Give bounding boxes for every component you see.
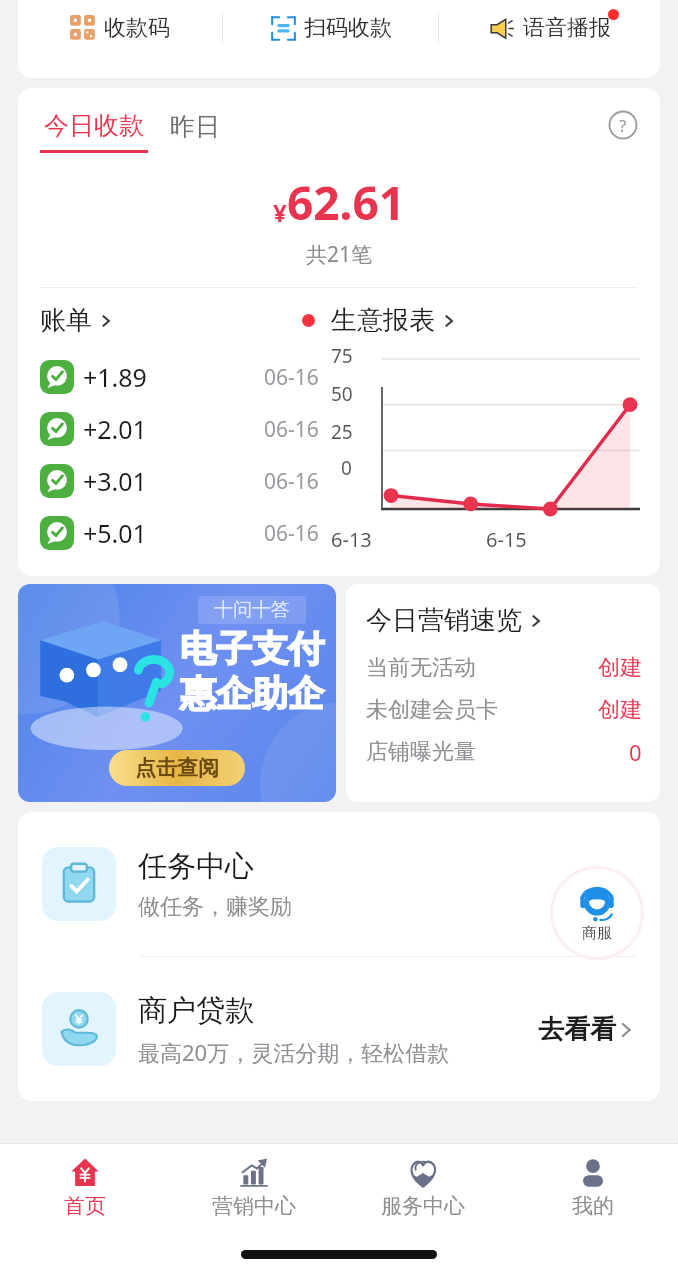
staticText: 6-15 xyxy=(486,526,527,553)
button[interactable]: 账单 xyxy=(40,304,325,337)
staticText: 去... xyxy=(568,866,616,902)
staticText: 服务中心 xyxy=(381,1193,465,1219)
staticText: ? xyxy=(619,114,627,137)
button[interactable]: 扫码收款 xyxy=(223,0,438,56)
button[interactable]: 商服 客服 xyxy=(553,869,641,957)
staticText: 创建 xyxy=(598,654,642,682)
button[interactable]: 语音播报 xyxy=(439,0,660,56)
staticText: 任务中心 xyxy=(138,848,254,885)
staticText: 首页 xyxy=(64,1193,106,1219)
staticText: 生意报表 xyxy=(331,304,435,337)
button[interactable]: 收款码 xyxy=(18,0,222,56)
staticText: 商户贷款 xyxy=(138,992,254,1029)
staticText: +3.01 xyxy=(83,464,147,498)
button[interactable]: 营销中心 xyxy=(169,1144,338,1228)
staticText: 电子支付 xyxy=(180,626,324,671)
staticText: 十问十答 xyxy=(214,598,290,622)
button[interactable]: 帮助 xyxy=(608,110,638,140)
staticText: 当前无活动 xyxy=(366,654,476,682)
staticText: 未创建会员卡 xyxy=(366,696,498,724)
staticText: +2.01 xyxy=(83,412,147,446)
button[interactable]: +3.01 xyxy=(40,455,325,507)
button[interactable]: 我的 xyxy=(508,1144,678,1228)
staticText: 店铺曝光量 xyxy=(366,738,476,766)
staticText: +1.89 xyxy=(83,360,147,394)
staticText: +5.01 xyxy=(83,516,147,550)
button[interactable]: 任务中心 xyxy=(42,812,636,956)
button[interactable]: 当前无活动 xyxy=(366,647,642,689)
staticText: 惠企助企 xyxy=(180,671,324,716)
button[interactable]: 服务中心 xyxy=(338,1144,508,1228)
button[interactable]: 今日营销速览 xyxy=(366,604,544,637)
button[interactable]: 昨日 xyxy=(170,110,220,142)
staticText: ¥ xyxy=(273,196,287,229)
staticText: 语音播报 xyxy=(523,14,611,42)
staticText: 06-16 xyxy=(264,415,319,444)
staticText: 创建 xyxy=(598,696,642,724)
staticText: 06-16 xyxy=(264,363,319,392)
button[interactable]: 点击查阅 xyxy=(109,750,245,786)
button[interactable]: +1.89 xyxy=(40,351,325,403)
staticText: 6-13 xyxy=(331,526,372,553)
staticText: 75 xyxy=(331,343,353,369)
staticText: 50 xyxy=(331,381,353,407)
staticText: 最高20万，灵活分期，轻松借款 xyxy=(138,1037,450,1067)
staticText: 点击查阅 xyxy=(135,755,219,781)
button[interactable]: 店铺曝光量 xyxy=(366,731,642,773)
staticText: 商服 xyxy=(582,924,612,943)
button[interactable]: 首页 xyxy=(0,1144,169,1228)
staticText: 25 xyxy=(331,419,353,445)
button[interactable]: 今日收款 xyxy=(40,110,148,153)
staticText: 0 xyxy=(341,455,352,481)
staticText: 扫码收款 xyxy=(304,14,392,42)
staticText: 账单 xyxy=(40,304,92,337)
button[interactable]: 未创建会员卡 xyxy=(366,689,642,731)
staticText: 营销中心 xyxy=(212,1193,296,1219)
button[interactable]: +5.01 xyxy=(40,507,325,559)
staticText: 收款码 xyxy=(104,14,170,42)
button[interactable]: 生意报表 xyxy=(331,304,457,337)
button[interactable]: +2.01 xyxy=(40,403,325,455)
button[interactable]: 十问十答 xyxy=(18,584,336,802)
staticText: 62.61 xyxy=(287,171,406,234)
staticText: 我的 xyxy=(572,1193,614,1219)
staticText: 做任务，赚奖励 xyxy=(138,893,292,921)
staticText: 0 xyxy=(629,737,642,767)
staticText: 共21笔 xyxy=(18,240,660,269)
button[interactable]: 商户贷款 xyxy=(42,957,636,1101)
staticText: 06-16 xyxy=(264,467,319,496)
staticText: 今日营销速览 xyxy=(366,604,522,637)
staticText: 06-16 xyxy=(264,519,319,548)
staticText: 今日收款 xyxy=(44,110,144,141)
staticText: 去看看 xyxy=(538,1013,616,1046)
